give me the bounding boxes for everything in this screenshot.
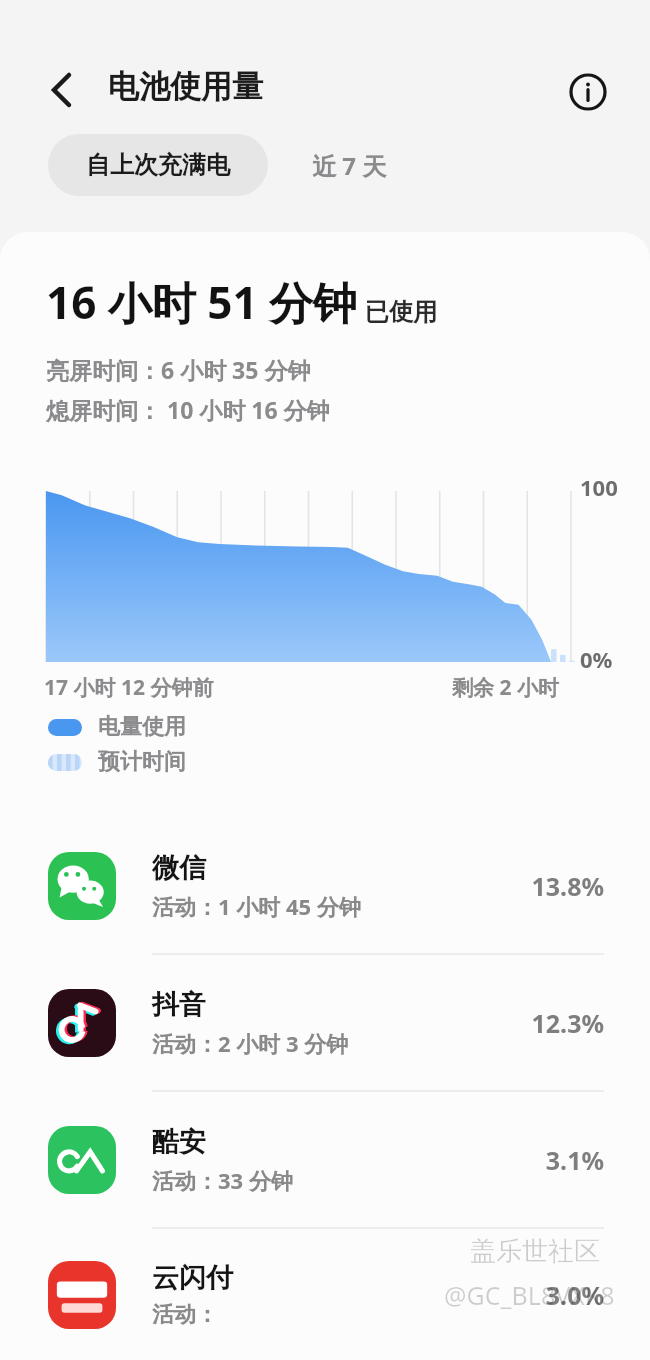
- button[interactable]: 近 7 天: [268, 133, 431, 198]
- staticText: 预计时间: [98, 748, 186, 776]
- staticText: 电池使用量: [108, 67, 263, 106]
- staticText: 近 7 天: [312, 149, 387, 182]
- staticText: 3.1%: [545, 1143, 604, 1177]
- button[interactable]: Back: [33, 62, 89, 118]
- staticText: 剩余 2 小时: [452, 673, 559, 702]
- staticText: 电量使用: [98, 713, 186, 741]
- staticText: @GC_BL8VXK8: [444, 1278, 615, 1312]
- button[interactable]: 酷安: [0, 1092, 650, 1229]
- staticText: 微信: [152, 851, 206, 885]
- staticText: 100: [580, 472, 618, 502]
- staticText: 抖音: [152, 988, 206, 1022]
- staticText: 0%: [580, 644, 613, 674]
- staticText: 自上次充满电: [86, 150, 230, 180]
- staticText: 活动：: [152, 1301, 218, 1329]
- staticText: 16 小时 51 分钟: [46, 272, 357, 332]
- button[interactable]: 微信: [0, 818, 650, 955]
- staticText: 17 小时 12 分钟前: [44, 673, 214, 702]
- staticText: 云闪付: [152, 1261, 233, 1295]
- staticText: 亮屏时间：6 小时 35 分钟: [46, 354, 311, 385]
- button[interactable]: 云闪付: [0, 1229, 650, 1360]
- button[interactable]: Information: [560, 64, 616, 120]
- staticText: 3.0%: [545, 1278, 604, 1312]
- staticText: 活动：1 小时 45 分钟: [152, 891, 361, 921]
- staticText: 已使用: [365, 297, 437, 327]
- staticText: 酷安: [152, 1125, 206, 1159]
- staticText: 盖乐世社区: [470, 1235, 600, 1268]
- staticText: 12.3%: [531, 1006, 604, 1040]
- button[interactable]: 抖音: [0, 955, 650, 1092]
- button[interactable]: 自上次充满电: [48, 134, 268, 196]
- staticText: 13.8%: [531, 869, 604, 903]
- staticText: 活动：33 分钟: [152, 1165, 293, 1195]
- staticText: 活动：2 小时 3 分钟: [152, 1028, 349, 1058]
- staticText: 熄屏时间： 10 小时 16 分钟: [46, 394, 330, 425]
